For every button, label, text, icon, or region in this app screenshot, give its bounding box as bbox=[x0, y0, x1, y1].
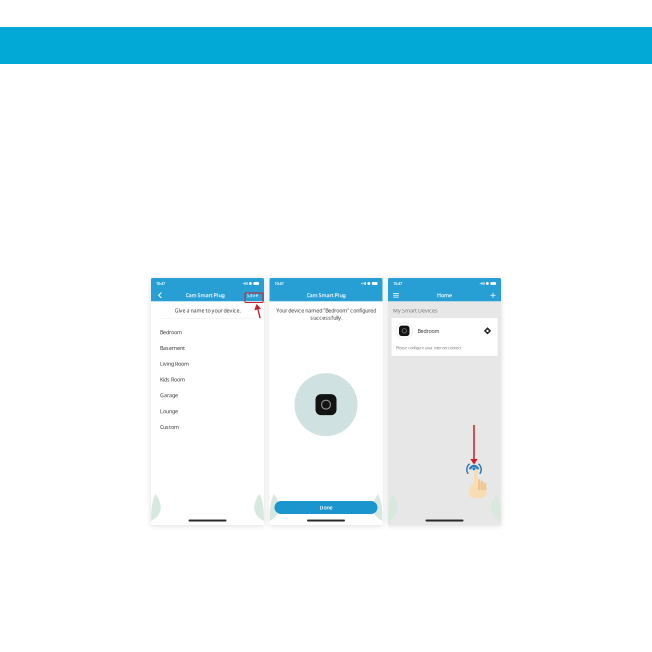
staticText: 10:47 bbox=[393, 281, 402, 286]
staticText: Give a name to your device. bbox=[174, 307, 240, 314]
button[interactable]: Save bbox=[244, 290, 260, 300]
button[interactable]: Lounge bbox=[151, 403, 264, 419]
button[interactable]: Kids Room bbox=[151, 372, 264, 387]
staticText: Custom bbox=[160, 423, 179, 430]
staticText: Bedroom bbox=[160, 328, 182, 336]
staticText: Bedroom bbox=[417, 327, 439, 334]
button[interactable]: Done bbox=[274, 501, 377, 514]
staticText: Kids Room bbox=[160, 376, 185, 383]
button[interactable]: Bedroom bbox=[391, 318, 497, 356]
staticText: Basement bbox=[160, 344, 185, 351]
button[interactable]: Custom bbox=[151, 419, 264, 435]
button[interactable]: Menu bbox=[391, 289, 400, 301]
button[interactable]: Living Room bbox=[151, 356, 264, 372]
staticText: Cam Smart Plug bbox=[306, 292, 345, 299]
staticText: Home bbox=[437, 292, 452, 299]
button[interactable]: Garage bbox=[151, 387, 264, 403]
staticText: 10:47 bbox=[274, 281, 283, 286]
button[interactable]: Bedroom bbox=[151, 324, 264, 340]
staticText: Done bbox=[319, 504, 332, 511]
staticText: Living Room bbox=[160, 360, 189, 367]
button[interactable]: Back bbox=[154, 289, 165, 301]
button[interactable]: Add device bbox=[488, 289, 497, 301]
staticText: My Smart Devices bbox=[393, 307, 438, 314]
staticText: Save bbox=[246, 292, 258, 299]
button[interactable]: Device settings bbox=[482, 325, 493, 336]
staticText: Garage bbox=[160, 392, 178, 399]
staticText: Please configure your internet connect bbox=[396, 345, 461, 350]
staticText: Cam Smart Plug bbox=[185, 292, 224, 299]
button[interactable]: Basement bbox=[151, 340, 264, 356]
staticText: 10:47 bbox=[156, 281, 165, 286]
staticText: Lounge bbox=[160, 407, 178, 415]
staticText: Your device named "Bedroom" configured s… bbox=[276, 307, 376, 321]
